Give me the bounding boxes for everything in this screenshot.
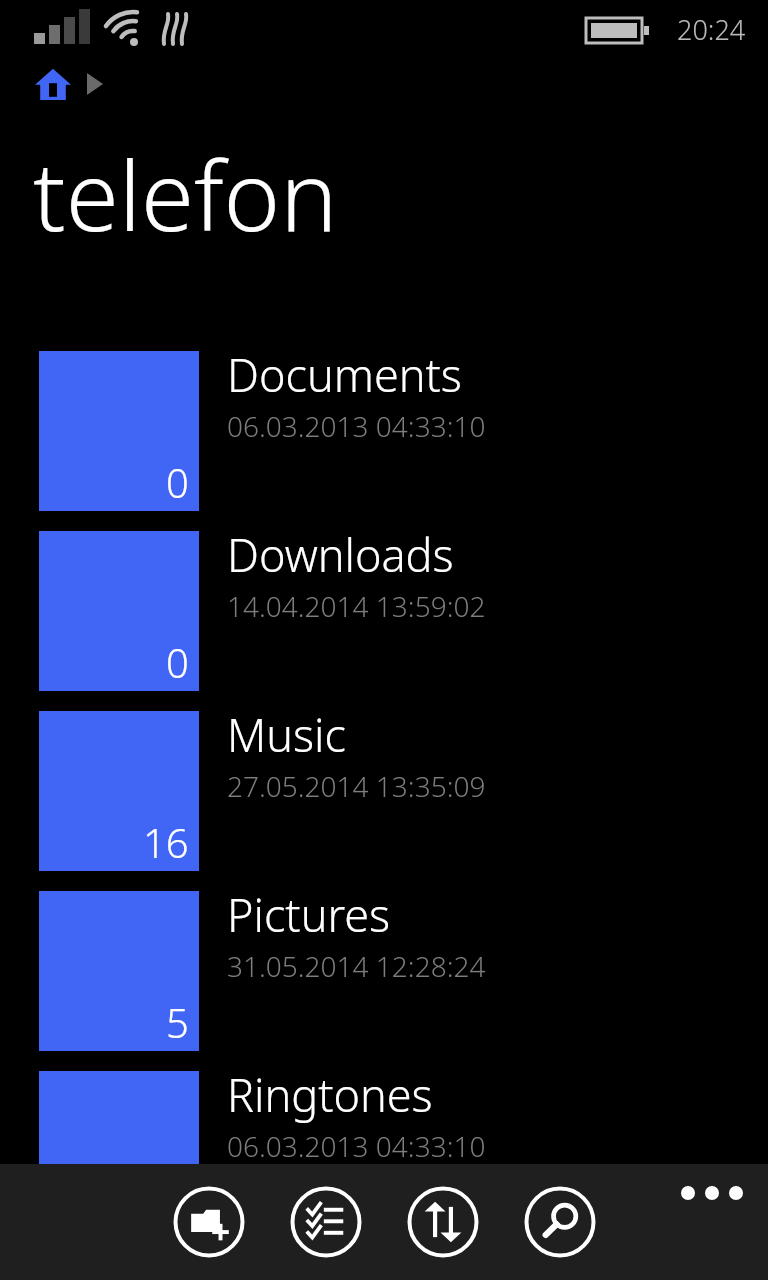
button[interactable]: 0 [0,524,768,704]
staticText: 5 [166,995,189,1049]
staticText: 0 [166,1175,189,1229]
staticText: 0 [166,635,189,689]
staticText: 31.05.2014 12:28:24 [227,947,486,985]
button[interactable]: Search [524,1186,596,1258]
staticText: Documents [227,344,462,405]
staticText: 0 [166,455,189,509]
button[interactable]: 5 [0,884,768,1064]
staticText: 14.04.2014 13:59:02 [227,587,486,625]
button[interactable]: 0 [0,344,768,524]
staticText: 27.05.2014 13:35:09 [227,767,486,805]
staticText: Downloads [227,524,454,585]
button[interactable]: Select items [290,1186,362,1258]
staticText: 20:24 [677,11,746,48]
button[interactable]: Home [33,64,73,104]
button[interactable]: 16 [0,704,768,884]
staticText: 16 [143,815,189,869]
staticText: Pictures [227,884,391,945]
button[interactable]: 0 [0,1244,768,1280]
staticText: Music [227,704,346,765]
button[interactable]: New folder [173,1186,245,1258]
button[interactable]: Sort [407,1186,479,1258]
button[interactable]: More options [682,1176,742,1210]
staticText: telefon [33,128,338,259]
staticText: Ringtones [227,1064,433,1125]
staticText: 06.03.2013 04:33:10 [227,1127,486,1165]
staticText: Videos [227,1244,363,1280]
button[interactable]: 0 [0,1064,768,1244]
staticText: 06.03.2013 04:33:10 [227,407,486,445]
